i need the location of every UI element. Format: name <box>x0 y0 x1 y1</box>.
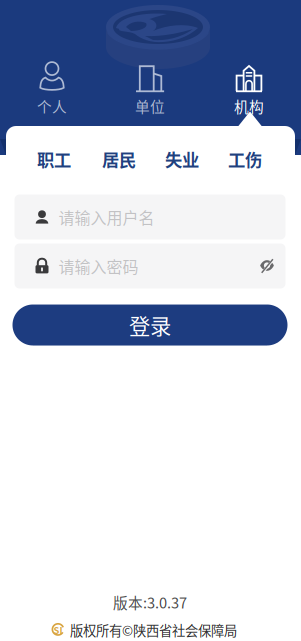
button[interactable]: 失业 <box>156 144 208 174</box>
button[interactable]: 登录 <box>12 304 287 345</box>
button[interactable]: 个人 <box>10 63 94 115</box>
button[interactable]: 居民 <box>93 144 145 174</box>
staticText: 居民 <box>102 146 136 172</box>
staticText: 版本:3.0.37 <box>113 591 187 613</box>
staticText: 登录 <box>129 310 171 340</box>
staticText: 请输入用户名 <box>58 205 154 229</box>
staticText: 职工 <box>37 146 71 172</box>
staticText: SI <box>53 623 62 637</box>
button[interactable]: 工伤 <box>219 144 271 174</box>
staticText: 失业 <box>165 146 199 172</box>
staticText: 机构 <box>234 95 264 117</box>
staticText: 个人 <box>37 95 67 117</box>
staticText: 单位 <box>135 95 165 117</box>
staticText: 请输入密码 <box>58 254 138 278</box>
button[interactable]: 单位 <box>108 63 192 115</box>
button[interactable]: 显示密码 <box>259 258 274 274</box>
button[interactable]: 机构 <box>207 63 291 115</box>
button[interactable]: 职工 <box>28 144 80 174</box>
staticText: 工伤 <box>228 146 262 172</box>
staticText: 版权所有©陕西省社会保障局 <box>70 620 237 640</box>
